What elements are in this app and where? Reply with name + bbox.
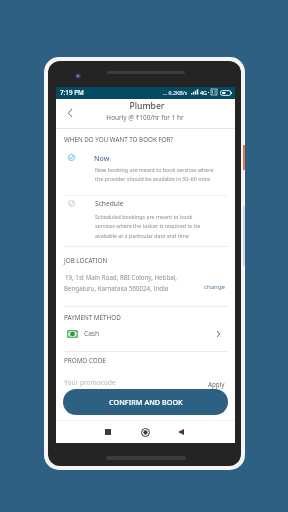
staticText: Plumber	[67, 100, 227, 112]
staticText: the provider should be available in 30–6…	[95, 175, 211, 182]
staticText: Now	[94, 153, 110, 163]
staticText: Cash	[84, 329, 100, 338]
staticText: PROMO CODE	[64, 356, 106, 365]
staticText: Your promocode	[64, 378, 116, 387]
staticText: CONFIRM AND BOOK	[109, 397, 183, 407]
button[interactable]: CONFIRM AND BOOK	[63, 389, 228, 415]
staticText: Hourly @ ₹100/hr for 1 hr	[65, 113, 225, 122]
staticText: services where the tasker is required to…	[95, 222, 201, 229]
button[interactable]: Apply	[206, 377, 227, 390]
staticText: JOB LOCATION	[64, 256, 108, 265]
staticText: PAYMENT METHOD	[64, 313, 121, 322]
staticText: change	[204, 282, 226, 290]
button[interactable]: Back	[62, 105, 79, 122]
button[interactable]: Recents	[100, 424, 116, 440]
button[interactable]: Home	[137, 424, 153, 440]
staticText: Apply	[208, 380, 225, 388]
staticText: … 0.2KB/s	[163, 89, 188, 96]
staticText: 7:19 PM	[60, 88, 84, 97]
staticText: Bengaluru, Karnataka 560024, India	[64, 284, 169, 292]
button[interactable]: Back	[173, 424, 189, 440]
staticText: Schedule	[95, 199, 124, 208]
staticText: Scheduled bookings are meant to book	[95, 213, 193, 220]
staticText: Now booking are meant to book services w…	[95, 166, 214, 173]
button[interactable]	[62, 150, 230, 186]
button[interactable]	[62, 325, 228, 343]
staticText: 19, 1st Main Road, RBI Colony, Hebbal,	[65, 273, 177, 281]
button[interactable]	[62, 196, 230, 240]
button[interactable]: change	[202, 279, 227, 293]
staticText: WHEN DO YOU WANT TO BOOK FOR?	[64, 135, 174, 144]
staticText: available at a particular date and time	[95, 232, 189, 239]
staticText: 4G	[200, 89, 207, 96]
